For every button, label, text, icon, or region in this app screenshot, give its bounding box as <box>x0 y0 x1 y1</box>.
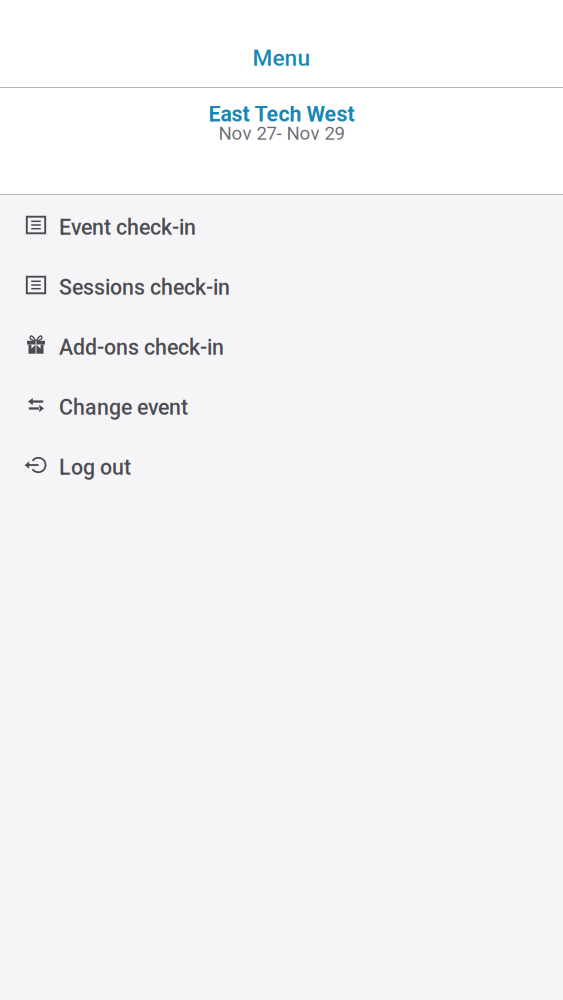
staticText: Event check-in <box>59 215 196 240</box>
button[interactable]: Sessions check-in <box>0 255 563 315</box>
staticText: Change event <box>59 395 188 420</box>
staticText: Add-ons check-in <box>59 335 224 360</box>
button[interactable]: Log out <box>0 435 563 495</box>
button[interactable]: Event check-in <box>0 195 563 255</box>
staticText: East Tech West <box>208 102 354 127</box>
staticText: Menu <box>252 45 310 71</box>
button[interactable]: Add-ons check-in <box>0 315 563 375</box>
staticText: Log out <box>59 455 131 480</box>
button[interactable]: Change event <box>0 375 563 435</box>
staticText: Nov 27- Nov 29 <box>218 122 344 144</box>
staticText: Sessions check-in <box>59 275 230 300</box>
